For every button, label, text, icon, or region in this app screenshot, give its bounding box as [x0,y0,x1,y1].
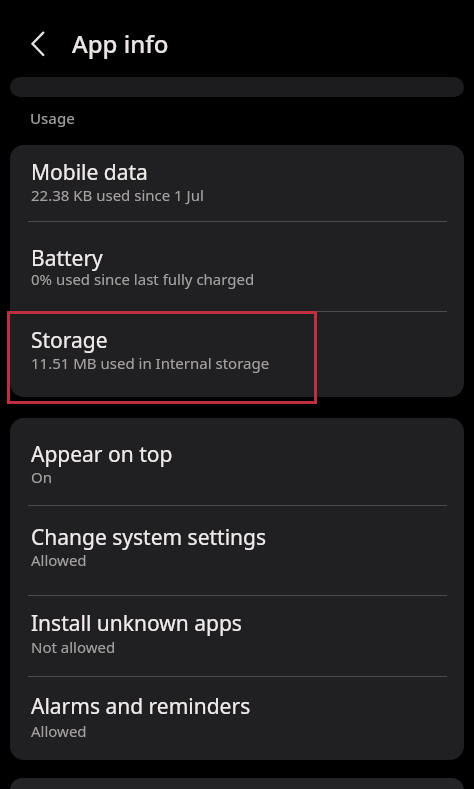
staticText: 22.38 KB used since 1 Jul [31,185,204,205]
staticText: App info [72,27,169,60]
button[interactable] [18,28,58,64]
staticText: 11.51 MB used in Internal storage [31,353,270,373]
button[interactable]: Change system settings [10,504,464,590]
staticText: 0% used since last fully charged [31,269,255,289]
staticText: Allowed [31,721,87,741]
button[interactable]: Install unknown apps [10,590,464,675]
staticText: On [31,467,52,487]
staticText: Install unknown apps [31,609,242,638]
staticText: Usage [30,108,75,128]
staticText: Alarms and reminders [31,692,251,721]
button[interactable]: Battery [10,229,464,313]
button[interactable]: Appear on top [10,418,464,504]
button[interactable]: Alarms and reminders [10,675,464,760]
button[interactable]: Mobile data [10,145,464,229]
staticText: Change system settings [31,523,267,552]
button[interactable]: Storage [10,313,464,397]
staticText: Appear on top [31,440,173,469]
staticText: Allowed [31,550,87,570]
staticText: Battery [31,244,103,273]
staticText: Not allowed [31,637,116,657]
staticText: Storage [31,326,108,355]
staticText: Mobile data [31,158,148,187]
